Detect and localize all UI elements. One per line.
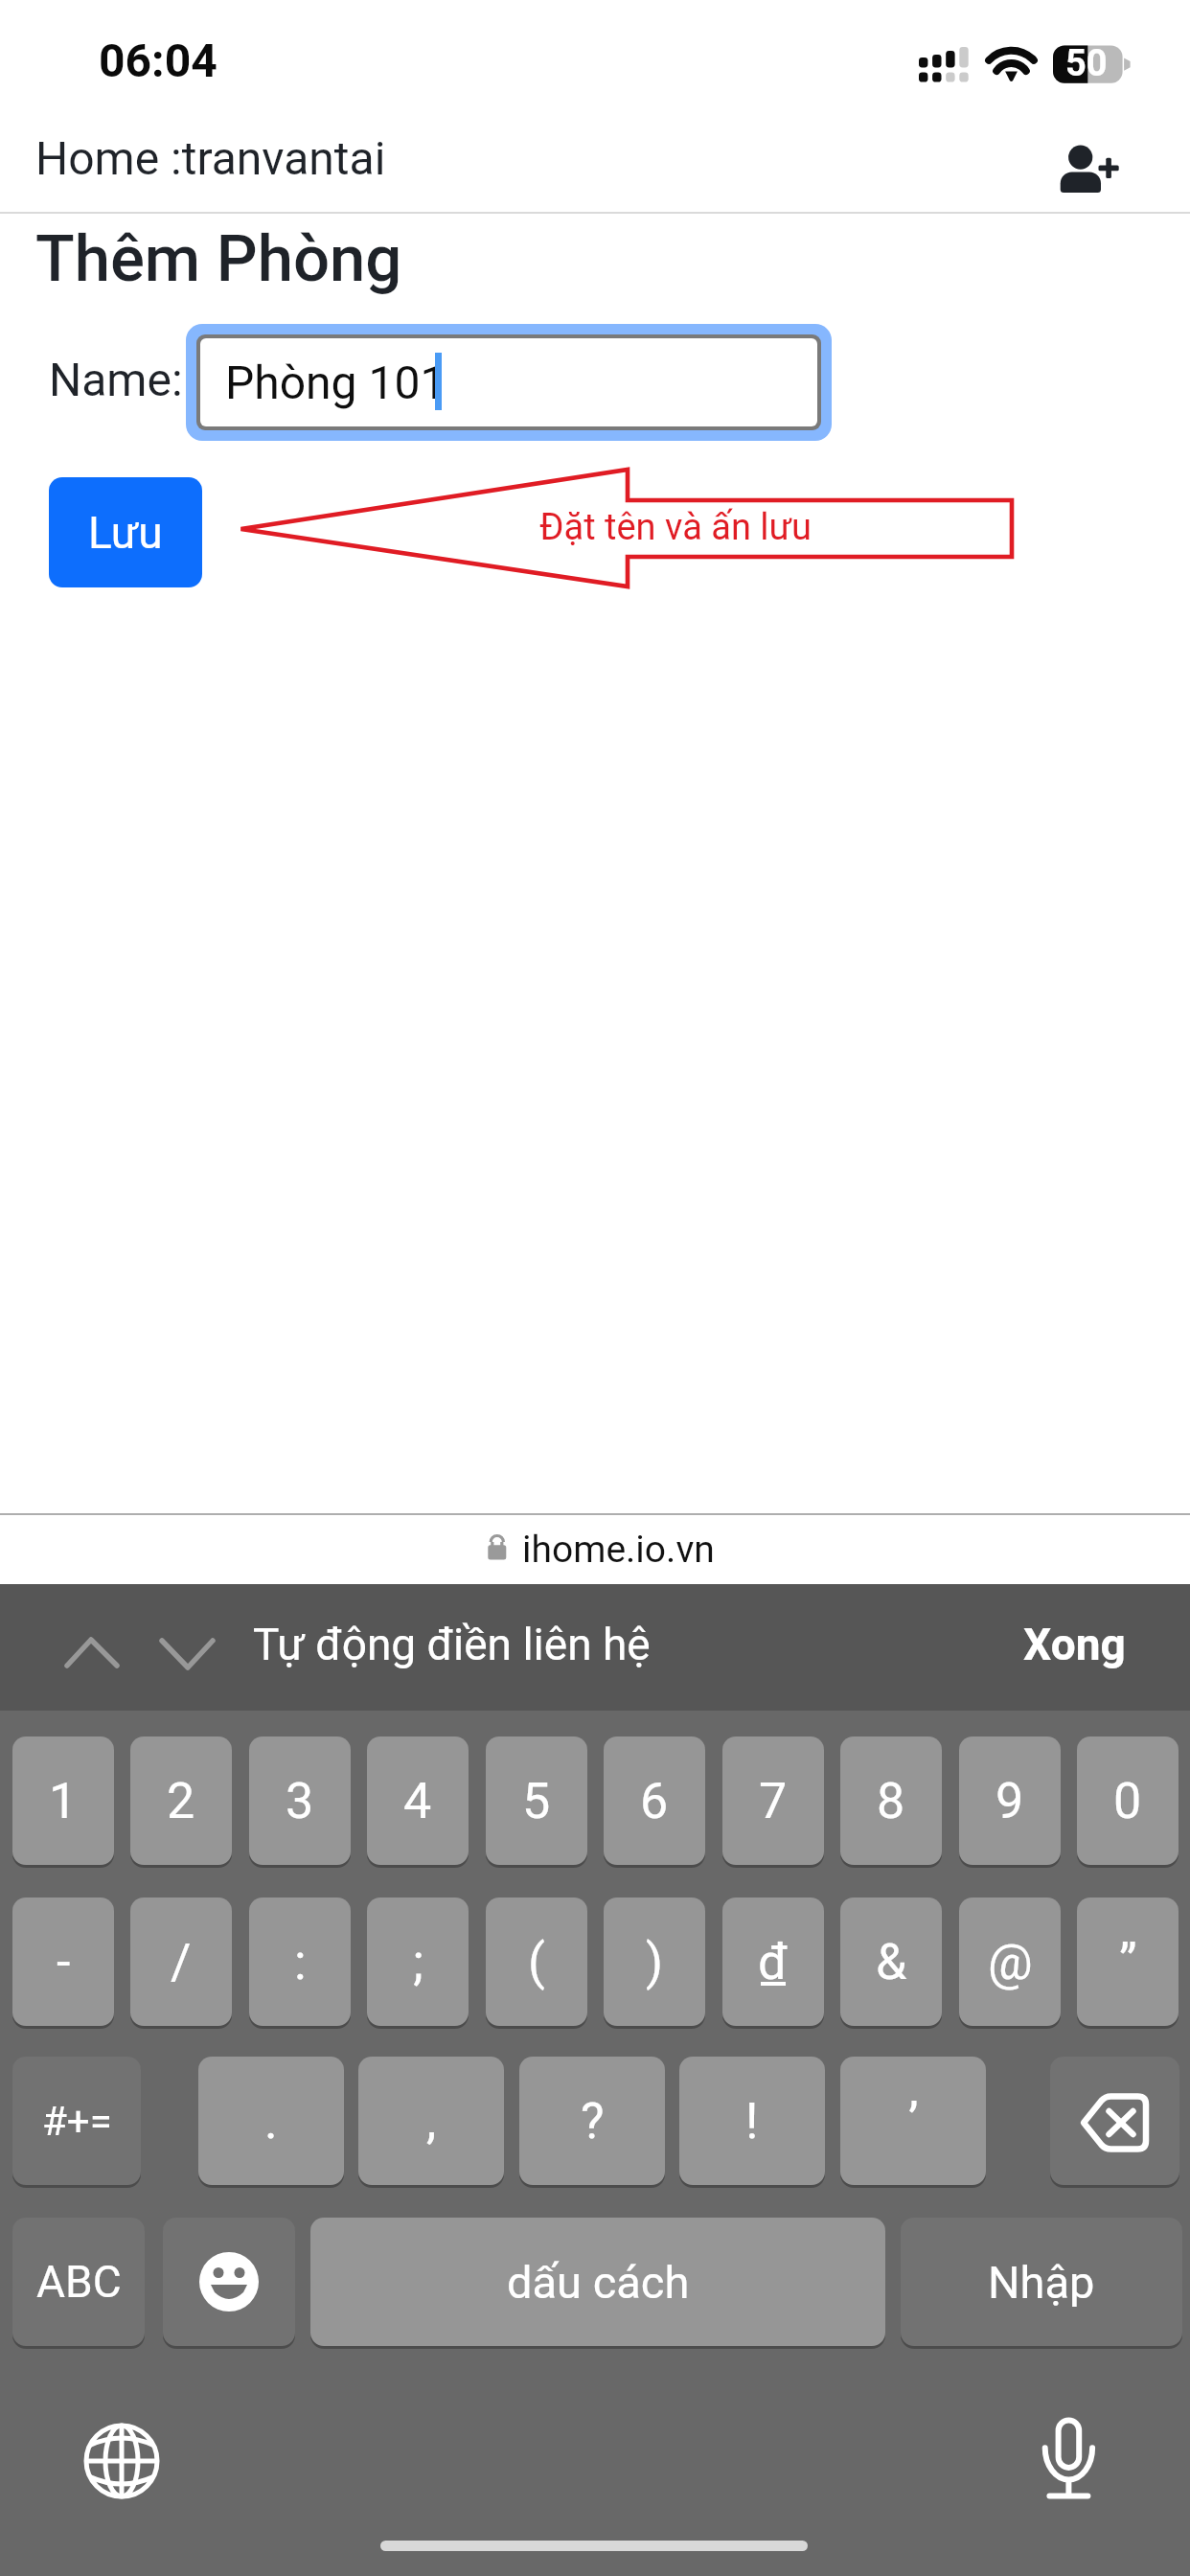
button[interactable]: Add user <box>1052 125 1121 194</box>
button[interactable]: Emoji <box>163 2218 295 2346</box>
staticText: 5 <box>522 1772 551 1830</box>
staticText: ! <box>745 2092 759 2150</box>
staticText: 06:04 <box>99 34 217 87</box>
button[interactable]: Tự động điền liên hệ <box>253 1619 651 1670</box>
staticText: @ <box>988 1933 1033 1991</box>
staticText: Nhập <box>988 2256 1095 2309</box>
button[interactable]: , <box>358 2057 504 2185</box>
staticText: ( <box>528 1933 545 1991</box>
button[interactable]: đ <box>722 1897 824 2026</box>
button[interactable]: 0 <box>1077 1736 1179 1865</box>
button[interactable]: ( <box>486 1897 587 2026</box>
staticText: 4 <box>403 1772 432 1830</box>
button[interactable]: Phòng 101 <box>200 338 817 426</box>
button[interactable]: 6 <box>604 1736 705 1865</box>
button[interactable]: : <box>249 1897 351 2026</box>
button[interactable]: #+= <box>12 2057 141 2185</box>
button[interactable]: 8 <box>840 1736 942 1865</box>
staticText: Tự động điền liên hệ <box>253 1619 651 1670</box>
button[interactable]: Previous field <box>53 1590 131 1668</box>
button[interactable]: ! <box>679 2057 825 2185</box>
staticText: ? <box>581 2092 605 2150</box>
staticText: 8 <box>877 1772 905 1830</box>
button[interactable]: dấu cách <box>310 2218 885 2346</box>
button[interactable]: Dictation <box>1030 2410 1109 2506</box>
button[interactable]: 3 <box>249 1736 351 1865</box>
staticText: ” <box>1119 1933 1137 1991</box>
staticText: . <box>264 2092 278 2150</box>
staticText: - <box>57 1933 71 1991</box>
button[interactable]: Backspace <box>1050 2057 1179 2185</box>
button[interactable]: . <box>198 2057 344 2185</box>
staticText: 0 <box>1113 1772 1142 1830</box>
button[interactable]: Xong <box>1023 1619 1126 1670</box>
button[interactable]: Nhập <box>901 2218 1182 2346</box>
staticText: #+= <box>42 2098 112 2145</box>
button[interactable]: - <box>12 1897 114 2026</box>
staticText: / <box>171 1933 192 1991</box>
staticText: Đặt tên và ấn lưu <box>539 506 812 549</box>
staticText: dấu cách <box>507 2256 690 2309</box>
staticText: đ <box>758 1933 789 1991</box>
button[interactable]: Lưu <box>49 477 202 587</box>
button[interactable]: 2 <box>130 1736 232 1865</box>
staticText: 2 <box>167 1772 195 1830</box>
staticText: ; <box>413 1933 423 1991</box>
staticText: ihome.io.vn <box>522 1528 715 1572</box>
staticText: Lưu <box>88 507 163 559</box>
staticText: Name: <box>49 353 183 406</box>
button[interactable]: 1 <box>12 1736 114 1865</box>
staticText: ABC <box>36 2256 122 2308</box>
staticText: Thêm Phòng <box>35 221 402 297</box>
staticText: 50 <box>1065 42 1108 85</box>
staticText: Xong <box>1023 1619 1126 1670</box>
staticText: 9 <box>995 1772 1024 1830</box>
button[interactable]: 9 <box>959 1736 1061 1865</box>
button[interactable]: / <box>130 1897 232 2026</box>
staticText: 6 <box>640 1772 669 1830</box>
staticText: Home :tranvantai <box>35 131 386 185</box>
button[interactable]: ) <box>604 1897 705 2026</box>
button[interactable]: 4 <box>367 1736 469 1865</box>
staticText: 7 <box>759 1772 788 1830</box>
staticText: : <box>294 1933 307 1991</box>
staticText: 3 <box>286 1772 314 1830</box>
button[interactable]: ” <box>1077 1897 1179 2026</box>
staticText: 1 <box>49 1772 78 1830</box>
button[interactable]: 7 <box>722 1736 824 1865</box>
button[interactable]: ; <box>367 1897 469 2026</box>
staticText: , <box>426 2092 437 2150</box>
button[interactable]: & <box>840 1897 942 2026</box>
button[interactable]: ABC <box>12 2218 145 2346</box>
button[interactable]: ’ <box>840 2057 986 2185</box>
staticText: Phòng 101 <box>225 356 446 409</box>
button[interactable]: Next field <box>148 1590 226 1668</box>
staticText: ’ <box>908 2092 919 2150</box>
staticText: ) <box>646 1933 664 1991</box>
button[interactable]: ? <box>519 2057 665 2185</box>
button[interactable]: Change keyboard <box>83 2423 160 2499</box>
button[interactable]: @ <box>959 1897 1061 2026</box>
staticText: & <box>876 1933 907 1991</box>
button[interactable]: 5 <box>486 1736 587 1865</box>
